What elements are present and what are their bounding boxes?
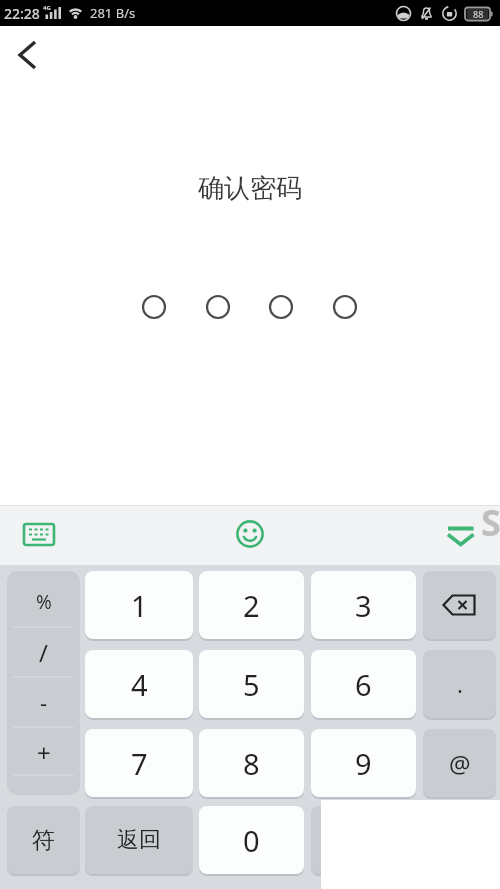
button[interactable]: 0 xyxy=(199,806,304,874)
staticText: 9 xyxy=(355,744,372,783)
button[interactable] xyxy=(423,571,496,639)
button[interactable] xyxy=(16,516,60,552)
staticText: S xyxy=(481,498,500,547)
button[interactable]: 9 xyxy=(311,729,416,797)
staticText: 88 xyxy=(473,8,484,20)
button[interactable]: 7 xyxy=(85,729,193,797)
button[interactable]: % xyxy=(7,582,80,622)
button[interactable]: 3 xyxy=(311,571,416,639)
staticText: 1 xyxy=(131,586,148,625)
staticText: 7 xyxy=(131,744,148,783)
button[interactable] xyxy=(440,517,484,553)
button[interactable]: @ xyxy=(423,729,496,797)
button[interactable]: 4 xyxy=(85,650,193,718)
staticText: 符 xyxy=(32,826,55,855)
button[interactable]: 8 xyxy=(199,729,304,797)
button[interactable] xyxy=(228,517,272,553)
staticText: @ xyxy=(449,747,471,780)
staticText: + xyxy=(37,736,51,769)
staticText: 确认密码 xyxy=(0,172,500,205)
staticText: / xyxy=(39,636,48,669)
staticText: - xyxy=(40,687,48,717)
button[interactable] xyxy=(311,806,416,874)
button[interactable]: - xyxy=(7,682,80,722)
staticText: 0 xyxy=(243,821,260,860)
staticText: 4 xyxy=(131,665,148,704)
staticText: 6 xyxy=(355,665,372,704)
staticText: % xyxy=(36,589,52,615)
staticText: 5 xyxy=(243,665,260,704)
staticText: . xyxy=(457,669,463,699)
button[interactable]: 符 xyxy=(7,806,80,874)
staticText: 8 xyxy=(243,744,260,783)
button[interactable]: . xyxy=(423,650,496,718)
button[interactable]: 返回 xyxy=(85,806,193,874)
button[interactable]: 2 xyxy=(199,571,304,639)
staticText: 22:28 xyxy=(4,4,40,23)
button[interactable]: 1 xyxy=(85,571,193,639)
staticText: 3 xyxy=(355,586,372,625)
staticText: 281 B/s xyxy=(90,4,136,22)
button[interactable]: 5 xyxy=(199,650,304,718)
staticText: 返回 xyxy=(117,826,161,854)
button[interactable]: + xyxy=(7,732,80,772)
button[interactable]: 6 xyxy=(311,650,416,718)
staticText: 4G xyxy=(43,4,51,12)
button[interactable] xyxy=(10,34,50,74)
button[interactable]: / xyxy=(7,632,80,672)
staticText: 2 xyxy=(243,586,260,625)
